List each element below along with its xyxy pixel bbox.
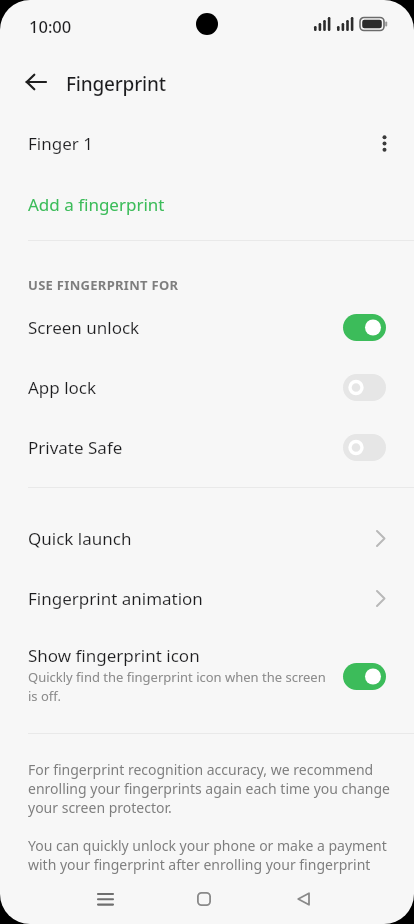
staticText: For fingerprint recognition accuracy, we…	[28, 760, 388, 817]
button[interactable]: Screen unlock	[0, 297, 414, 357]
staticText: Private Safe	[28, 436, 123, 459]
button[interactable]	[176, 871, 232, 924]
button[interactable]: Quick launch	[0, 508, 414, 568]
staticText: Fingerprint animation	[28, 587, 203, 610]
staticText: Screen unlock	[28, 316, 140, 339]
staticText: Finger 1	[28, 132, 93, 155]
staticText: USE FINGERPRINT FOR	[28, 276, 179, 294]
button[interactable]	[77, 871, 133, 924]
button[interactable]: Private Safe	[0, 417, 414, 477]
staticText: Quick launch	[28, 527, 132, 550]
button[interactable]	[275, 871, 331, 924]
button[interactable]: Fingerprint animation	[0, 568, 414, 628]
staticText: Quickly find the fingerprint icon when t…	[28, 668, 326, 705]
button[interactable]: Finger 1	[0, 113, 414, 173]
staticText: Add a fingerprint	[28, 193, 165, 216]
button[interactable]: App lock	[0, 357, 414, 417]
staticText: App lock	[28, 376, 97, 399]
button[interactable]: Add a fingerprint	[0, 174, 414, 234]
button[interactable]: Show fingerprint icon	[0, 632, 414, 716]
button[interactable]	[14, 68, 58, 96]
staticText: You can quickly unlock your phone or mak…	[28, 836, 387, 874]
staticText: 10:00	[29, 15, 72, 37]
staticText: Show fingerprint icon	[28, 644, 200, 667]
staticText: Fingerprint	[66, 71, 166, 97]
